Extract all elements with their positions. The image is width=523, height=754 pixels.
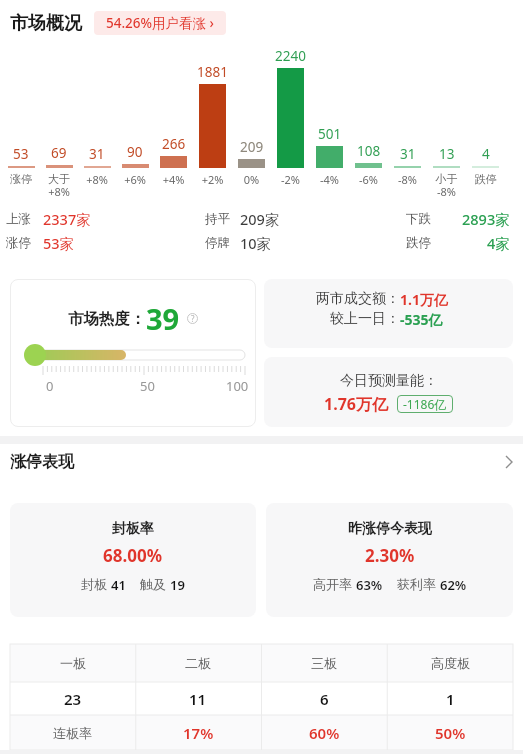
staticText: 昨涨停今表现	[348, 520, 432, 538]
staticText: 31	[89, 145, 105, 163]
staticText: 连板率	[53, 725, 92, 741]
staticText: 二板	[185, 655, 211, 671]
staticText: 4	[482, 145, 490, 163]
staticText: 53家	[43, 233, 75, 253]
staticText: 41	[111, 576, 126, 594]
staticText: 今日预测量能：	[340, 372, 438, 390]
staticText: 23	[64, 689, 82, 709]
staticText: 封板	[81, 576, 107, 592]
staticText: 2893家	[462, 209, 510, 229]
staticText: -2%	[271, 172, 310, 187]
staticText: 10家	[240, 233, 272, 253]
button[interactable]: 两市成交额：	[264, 279, 513, 348]
staticText: 39	[146, 299, 180, 338]
staticText: 2337家	[43, 209, 91, 229]
staticText: 两市成交额：	[316, 290, 400, 308]
staticText: 13	[439, 145, 455, 163]
staticText: 4家	[487, 233, 510, 253]
staticText: 17%	[183, 723, 214, 743]
staticText: 一板	[60, 655, 86, 671]
staticText: -6%	[349, 172, 388, 187]
staticText: 2.30%	[365, 544, 415, 567]
staticText: 0	[46, 377, 54, 395]
staticText: +2%	[193, 172, 232, 187]
button[interactable]: 今日预测量能：	[264, 357, 513, 427]
staticText: 266	[162, 135, 186, 153]
staticText: 涨停	[6, 235, 31, 251]
staticText: 11	[189, 689, 207, 709]
staticText: 19	[170, 576, 185, 594]
staticText: 90	[127, 143, 143, 161]
staticText: 2240	[275, 47, 306, 65]
staticText: 31	[400, 145, 416, 163]
staticText: 62%	[440, 576, 467, 594]
staticText: 1.76万亿	[324, 393, 388, 415]
staticText: 获利率	[397, 576, 436, 592]
staticText: -8%	[388, 172, 427, 187]
staticText: 54.26%用户看涨 ›	[106, 14, 214, 32]
staticText: 53	[13, 145, 29, 163]
staticText: 市场热度：	[68, 309, 146, 329]
staticText: 68.00%	[103, 544, 163, 567]
staticText: 市场概况	[10, 12, 82, 35]
button[interactable]: 昨涨停今表现	[266, 503, 513, 617]
staticText: 高开率	[313, 576, 352, 592]
staticText: 上涨	[6, 211, 31, 227]
staticText: 持平	[205, 211, 230, 227]
button[interactable]: 市场热度：	[10, 279, 256, 427]
staticText: +4%	[154, 172, 193, 187]
staticText: 停牌	[205, 235, 230, 251]
staticText: -4%	[310, 172, 349, 187]
staticText: 69	[51, 144, 67, 162]
staticText: 触及	[140, 576, 166, 592]
staticText: 209家	[240, 209, 280, 229]
staticText: 封板率	[112, 520, 154, 538]
staticText: 63%	[356, 576, 383, 594]
staticText: +8%	[78, 172, 116, 187]
staticText: 1881	[197, 63, 228, 81]
button[interactable]: 54.26%用户看涨 ›	[94, 11, 226, 35]
staticText: 跌停	[406, 235, 431, 251]
staticText: 涨停	[2, 172, 40, 186]
staticText: 1.1万亿	[400, 290, 448, 309]
staticText: 涨停表现	[10, 452, 74, 472]
staticText: 小于 -8%	[427, 172, 466, 199]
staticText: 100	[226, 377, 249, 395]
staticText: -535亿	[400, 310, 443, 329]
staticText: ?	[191, 313, 195, 324]
staticText: 501	[318, 125, 342, 143]
staticText: 较上一日：	[330, 310, 400, 328]
staticText: 60%	[309, 723, 340, 743]
staticText: 50%	[435, 723, 466, 743]
staticText: -1186亿	[403, 396, 447, 412]
staticText: 大于 +8%	[40, 172, 78, 199]
staticText: 1	[446, 689, 455, 709]
staticText: 三板	[311, 655, 337, 671]
staticText: 209	[240, 138, 264, 156]
staticText: 108	[357, 142, 381, 160]
button[interactable]: 涨停表现	[10, 444, 513, 480]
staticText: 50	[140, 377, 155, 395]
button[interactable]: 封板率	[10, 503, 256, 617]
staticText: 跌停	[466, 172, 505, 186]
staticText: 下跌	[406, 211, 431, 227]
staticText: 6	[320, 689, 329, 709]
staticText: 高度板	[431, 655, 470, 671]
staticText: +6%	[116, 172, 154, 187]
staticText: 0%	[232, 172, 271, 187]
